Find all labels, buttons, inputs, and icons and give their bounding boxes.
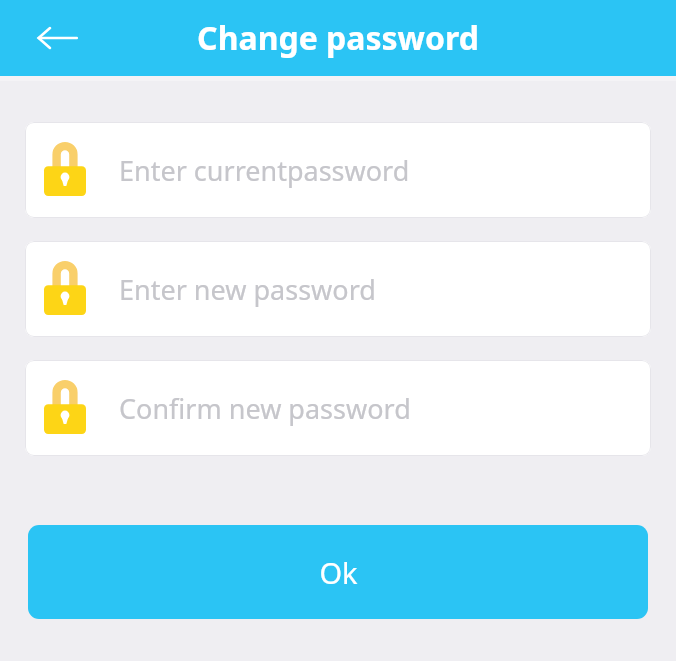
button[interactable]: Enter currentpassword — [25, 122, 651, 218]
staticText: Enter new password — [119, 271, 376, 308]
staticText: Ok — [319, 553, 358, 592]
button[interactable]: Ok — [28, 525, 648, 619]
staticText: Change password — [0, 16, 676, 60]
button[interactable]: Back — [30, 10, 86, 66]
staticText: Enter currentpassword — [119, 152, 410, 189]
button[interactable]: Enter new password — [25, 241, 651, 337]
button[interactable]: Confirm new password — [25, 360, 651, 456]
staticText: Confirm new password — [119, 390, 411, 427]
